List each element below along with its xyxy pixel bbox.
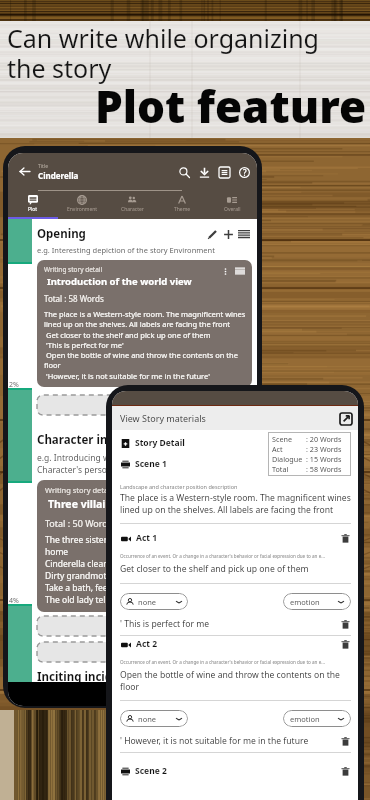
button[interactable]: Menu [236,226,252,242]
staticText: : 23 Words [306,444,342,454]
staticText: ' However, it is not suitable for me in … [120,735,339,747]
staticText: Cinderella cleans with a mop [45,558,160,570]
staticText: Writing story detail [44,265,103,274]
staticText: Total : 58 Words [44,293,104,304]
staticText: 4% [9,596,19,606]
staticText: 2% [9,380,19,390]
button[interactable]: Scene 1 [120,458,167,470]
staticText: Environment [67,206,98,213]
staticText: : 58 Words [306,464,342,474]
button[interactable]: Act 2 [120,638,351,650]
button[interactable]: Edit [204,226,220,242]
staticText: Story Detail [135,437,185,449]
staticText: Act [272,444,306,454]
staticText: : 15 Words [306,454,342,464]
button[interactable]: Act 1 [120,532,351,544]
staticText: emotion [290,597,338,607]
staticText: Three villains [48,497,118,511]
staticText: The place is a Western-style room. The m… [120,492,351,515]
button[interactable]: Writing story detail [37,260,252,387]
button[interactable]: Overall [207,191,257,217]
button[interactable]: Scene 2 [120,765,351,777]
staticText: The old lady tells Cinderella [45,594,155,606]
button[interactable]: Delete [339,735,351,747]
staticText: Take a bath, feed, and change her appear… [45,582,230,594]
staticText: Plot [28,206,38,213]
staticText: The three sisters go out and Cinderella … [45,534,246,558]
staticText: Cinderella [38,170,79,181]
staticText: Occurrence of an event. Or a change in a… [120,553,325,559]
staticText: Character [121,206,144,213]
staticText: Get closer to the shelf and pick up one … [44,330,211,340]
staticText: Scene [272,434,306,444]
staticText: Introduction of the world view [47,275,192,288]
staticText: 'However, it is not suitable for me in t… [44,371,210,381]
button[interactable]: Delete [339,532,351,544]
staticText: The place is a Western-style room. The m… [44,309,246,330]
button[interactable]: Plot [8,191,57,217]
staticText: emotion [290,714,338,724]
staticText: View Story materials [120,412,338,424]
button[interactable]: Materials [214,162,234,182]
button[interactable]: none [120,593,188,610]
staticText: Act 1 [136,532,339,544]
button[interactable]: Story Detail [120,437,185,449]
staticText: Dialogue [272,454,306,464]
staticText: Opening [37,226,204,242]
button[interactable]: Download [194,162,214,182]
staticText: Title [38,163,48,170]
staticText: Writing story detail [45,485,113,495]
button[interactable]: Writing story detail [37,480,252,612]
button[interactable]: Delete [339,765,351,777]
button[interactable]: emotion [283,710,351,727]
button[interactable]: Help [234,162,254,182]
button[interactable]: Character [107,191,157,217]
button[interactable]: View Story materials [112,406,358,430]
staticText: ' This is perfect for me [120,618,339,630]
staticText: Open the bottle of wine and throw the co… [120,669,351,692]
staticText: Can write while organizing the story [7,21,319,86]
staticText: Character introduction [37,432,252,448]
button[interactable]: Delete [339,618,351,630]
button[interactable]: Theme [157,191,207,217]
staticText: Scene 2 [135,765,339,777]
staticText: Overall [224,206,241,213]
button[interactable]: Open in new window [338,411,353,426]
staticText: Theme [174,206,191,213]
button[interactable]: Environment [57,191,107,217]
staticText: Act 2 [136,638,339,650]
staticText: ? [243,167,247,178]
button[interactable]: emotion [283,593,351,610]
button[interactable]: Delete [339,638,351,650]
staticText: : 20 Words [306,434,342,444]
staticText: Get closer to the shelf and pick up one … [120,563,309,575]
staticText: e.g. Introducing world view and characte… [37,452,213,476]
staticText: Scene 1 [135,458,167,470]
staticText: 'This is perfect for me' [44,340,124,350]
staticText: Occurrence of an event. Or a change in a… [120,659,325,665]
staticText: none [138,714,176,724]
staticText: Open the bottle of wine and throw the co… [44,350,246,371]
button[interactable]: Back [14,161,35,182]
staticText: Total : 50 Words [45,517,113,529]
staticText: Total [272,464,306,474]
button[interactable]: none [120,710,188,727]
staticText: Plot feature [95,76,367,136]
button[interactable]: Search [174,162,194,182]
staticText: Inciting incident [37,669,132,682]
button[interactable]: Add [220,226,236,242]
staticText: Dirty grandmother appears [45,570,155,582]
staticText: e.g. Interesting depiction of the story … [37,245,215,255]
staticText: none [138,597,176,607]
staticText: Landscape and character position descrip… [120,483,238,490]
